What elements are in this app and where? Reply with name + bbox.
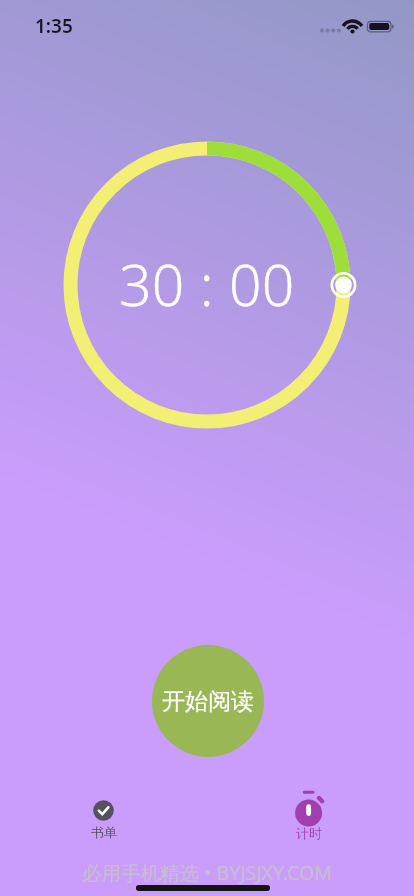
staticText: 必用手机精选 • BYJSJXY.COM — [82, 859, 332, 886]
staticText: 书单 — [91, 824, 117, 840]
button[interactable]: 开始阅读 — [152, 645, 264, 757]
staticText: 计时 — [296, 825, 322, 841]
button[interactable]: 书单 — [73, 800, 134, 840]
button[interactable]: 计时 — [278, 789, 339, 841]
staticText: 1:35 — [35, 13, 73, 39]
staticText: 开始阅读 — [162, 687, 254, 716]
staticText: 30 : 00 — [119, 245, 295, 323]
